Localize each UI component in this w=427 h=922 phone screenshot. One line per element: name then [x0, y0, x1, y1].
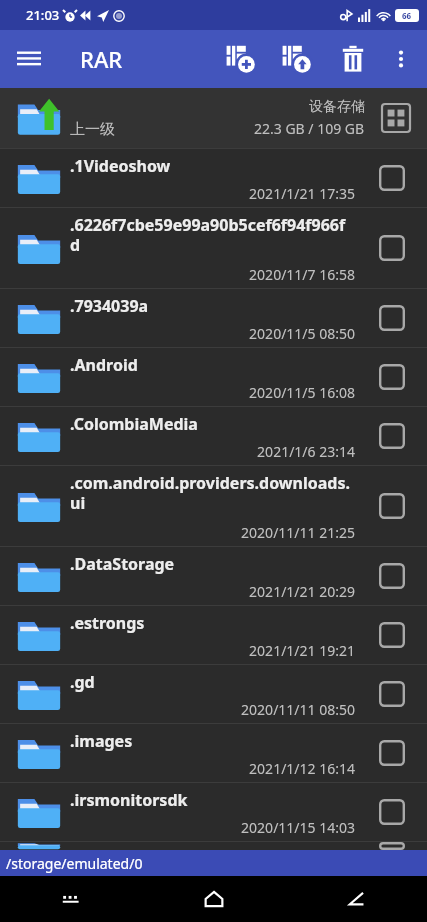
staticText: .estrongs [70, 612, 145, 634]
staticText: .Android [70, 354, 138, 376]
button[interactable]: .7934039a [0, 289, 427, 347]
button[interactable]: .com.android.providers.downloads.ui [0, 466, 427, 546]
button[interactable]: .Android [0, 348, 427, 406]
button[interactable]: Select .DataStorage [375, 559, 409, 593]
button[interactable]: Select .gd [375, 677, 409, 711]
button[interactable]: Select .6226f7cbe59e99a90b5cef6f94f966fd [375, 231, 409, 265]
staticText: .ColombiaMedia [70, 413, 198, 435]
staticText: 2021/1/21 17:35 [249, 184, 355, 203]
staticText: .com.android.providers.downloads.ui [70, 472, 355, 513]
button[interactable]: .images [0, 724, 427, 782]
button[interactable]: .irsmonitorsdk [0, 783, 427, 841]
button[interactable]: Home [143, 876, 285, 922]
staticText: 22.3 GB / 109 GB [254, 119, 365, 138]
staticText: .DataStorage [70, 553, 175, 575]
button[interactable]: Select .estrongs [375, 618, 409, 652]
button[interactable]: Select .1Videoshow [375, 161, 409, 195]
button[interactable]: More options [381, 30, 421, 88]
staticText: .irsmonitorsdk [70, 789, 188, 811]
staticText: 2020/11/7 16:58 [249, 265, 355, 284]
button[interactable]: .gd [0, 665, 427, 723]
staticText: 66 [402, 10, 412, 21]
staticText: 设备存储 [309, 98, 365, 116]
staticText: 2020/11/11 21:25 [241, 523, 355, 542]
button[interactable]: 上一级 [0, 88, 427, 148]
button[interactable]: Select .images [375, 736, 409, 770]
staticText: 2021/1/6 23:14 [257, 442, 355, 461]
button[interactable]: .DataStorage [0, 547, 427, 605]
staticText: .7934039a [70, 295, 149, 317]
staticText: 2020/11/11 08:50 [241, 700, 355, 719]
button[interactable]: Select .Android [375, 360, 409, 394]
staticText: .1Videoshow [70, 155, 171, 177]
staticText: .6226f7cbe59e99a90b5cef6f94f966fd [70, 214, 355, 255]
button[interactable]: Back [285, 876, 427, 922]
button[interactable]: /storage/emulated/0 [0, 850, 427, 876]
button[interactable]: Extract archive [269, 30, 325, 88]
button[interactable]: Recents [0, 876, 143, 922]
button[interactable]: .1Videoshow [0, 149, 427, 207]
staticText: .gd [70, 671, 95, 693]
staticText: 上一级 [70, 120, 115, 139]
staticText: 2021/1/12 16:14 [249, 759, 355, 778]
button[interactable]: Delete [325, 30, 381, 88]
staticText: 2021/1/21 19:21 [249, 641, 355, 660]
staticText: 2020/11/5 08:50 [249, 324, 355, 343]
button[interactable]: Grid view [377, 99, 415, 137]
staticText: RAR [80, 44, 123, 74]
staticText: 2020/11/15 14:03 [241, 818, 355, 837]
button[interactable]: .jchat [0, 842, 427, 850]
staticText: 21:03 [26, 6, 60, 24]
button[interactable]: Menu [0, 30, 58, 88]
button[interactable]: Add to archive [213, 30, 269, 88]
button[interactable]: .6226f7cbe59e99a90b5cef6f94f966fd [0, 208, 427, 288]
staticText: 2021/1/21 20:29 [249, 582, 355, 601]
button[interactable]: Select .irsmonitorsdk [375, 795, 409, 829]
button[interactable]: .estrongs [0, 606, 427, 664]
button[interactable]: .ColombiaMedia [0, 407, 427, 465]
button[interactable]: Select .ColombiaMedia [375, 419, 409, 453]
staticText: /storage/emulated/0 [6, 854, 143, 873]
button[interactable]: Select .com.android.providers.downloads.… [375, 489, 409, 523]
button[interactable]: Select .7934039a [375, 301, 409, 335]
staticText: .images [70, 730, 133, 752]
button[interactable]: Select .jchat [375, 842, 409, 850]
staticText: 2020/11/5 16:08 [249, 383, 355, 402]
